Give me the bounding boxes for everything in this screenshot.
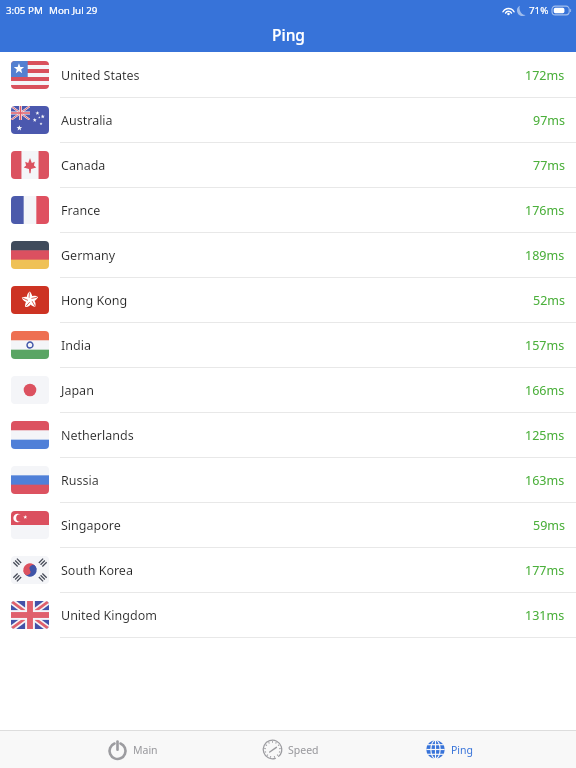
button[interactable]: India bbox=[0, 323, 576, 368]
staticText: India bbox=[61, 337, 91, 354]
staticText: 163ms bbox=[525, 472, 565, 489]
staticText: 3:05 PM bbox=[6, 4, 43, 17]
staticText: Russia bbox=[61, 472, 99, 489]
staticText: Ping bbox=[451, 743, 474, 757]
staticText: 131ms bbox=[525, 607, 565, 624]
staticText: 125ms bbox=[525, 427, 565, 444]
staticText: Speed bbox=[288, 743, 319, 757]
staticText: 59ms bbox=[533, 517, 565, 534]
button[interactable]: Ping bbox=[425, 731, 474, 768]
staticText: 176ms bbox=[525, 202, 565, 219]
staticText: Germany bbox=[61, 247, 116, 264]
button[interactable]: Japan bbox=[0, 368, 576, 413]
staticText: 71% bbox=[529, 4, 549, 17]
staticText: 172ms bbox=[525, 67, 565, 84]
other: Speed bbox=[262, 739, 283, 760]
button[interactable]: Main bbox=[107, 731, 158, 768]
staticText: United States bbox=[61, 67, 140, 84]
staticText: Canada bbox=[61, 157, 106, 174]
staticText: Ping bbox=[272, 24, 305, 45]
button[interactable]: Singapore bbox=[0, 503, 576, 548]
button[interactable]: Germany bbox=[0, 233, 576, 278]
staticText: Australia bbox=[61, 112, 113, 129]
staticText: Singapore bbox=[61, 517, 121, 534]
staticText: 77ms bbox=[533, 157, 565, 174]
staticText: 97ms bbox=[533, 112, 565, 129]
staticText: Mon Jul 29 bbox=[49, 4, 98, 17]
staticText: Japan bbox=[61, 382, 94, 399]
button[interactable]: Russia bbox=[0, 458, 576, 503]
staticText: 166ms bbox=[525, 382, 565, 399]
button[interactable]: United States bbox=[0, 53, 576, 98]
staticText: 189ms bbox=[525, 247, 565, 264]
staticText: Hong Kong bbox=[61, 292, 128, 309]
other: Main bbox=[107, 739, 128, 760]
button[interactable]: Netherlands bbox=[0, 413, 576, 458]
staticText: 52ms bbox=[533, 292, 565, 309]
staticText: France bbox=[61, 202, 101, 219]
button[interactable]: Speed bbox=[262, 731, 319, 768]
button[interactable]: South Korea bbox=[0, 548, 576, 593]
staticText: Netherlands bbox=[61, 427, 134, 444]
staticText: South Korea bbox=[61, 562, 133, 579]
button[interactable]: Canada bbox=[0, 143, 576, 188]
button[interactable]: Australia bbox=[0, 98, 576, 143]
button[interactable]: United Kingdom bbox=[0, 593, 576, 638]
staticText: United Kingdom bbox=[61, 607, 157, 624]
staticText: Main bbox=[133, 743, 158, 757]
staticText: 177ms bbox=[525, 562, 565, 579]
other: Ping bbox=[425, 739, 446, 760]
button[interactable]: France bbox=[0, 188, 576, 233]
staticText: 157ms bbox=[525, 337, 565, 354]
button[interactable]: Hong Kong bbox=[0, 278, 576, 323]
